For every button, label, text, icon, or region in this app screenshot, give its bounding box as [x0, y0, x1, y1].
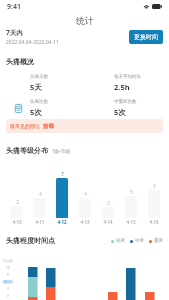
staticText: 最常见的部位 — [10, 123, 40, 129]
staticText: 4-13 — [80, 219, 90, 225]
staticText: 4-14 — [103, 219, 113, 225]
staticText: 4-11 — [35, 219, 45, 225]
button[interactable]: 最常见的部位 — [6, 119, 163, 133]
staticText: 5天 — [30, 82, 42, 92]
staticText: 4-15 — [126, 219, 136, 225]
staticText: 头痛天数 — [30, 74, 48, 80]
staticText: 1级-10级 — [52, 148, 71, 154]
staticText: 6 — [153, 183, 156, 189]
staticText: 统计 — [76, 15, 94, 26]
staticText: 4 — [39, 191, 42, 197]
staticText: 9:41 — [7, 2, 21, 12]
staticText: 5次 — [30, 107, 42, 117]
staticText: 头痛次数 — [30, 99, 48, 105]
staticText: 7天内 — [6, 28, 23, 37]
staticText: 4-12 — [57, 219, 67, 225]
staticText: 5次 — [114, 107, 126, 117]
staticText: 5 — [130, 189, 133, 195]
staticText: 2022.04.04-2022.04.11 — [6, 39, 59, 46]
staticText: 2 — [7, 294, 9, 298]
button[interactable]: 更换时间 — [129, 30, 163, 44]
staticText: 6万分 — [4, 280, 12, 284]
staticText: 4 — [7, 287, 9, 291]
staticText: 4-10 — [12, 219, 22, 225]
staticText: 2 — [16, 199, 19, 205]
staticText: 2 — [107, 200, 110, 206]
staticText: 7 — [61, 171, 64, 177]
staticText: 8 — [7, 273, 9, 277]
staticText: 中重度次数 — [114, 99, 137, 105]
staticText: 每天平均时长 — [114, 74, 141, 80]
staticText: 4 — [84, 191, 87, 197]
staticText: 重度 — [154, 238, 163, 244]
staticText: 轻度 — [116, 238, 125, 244]
staticText: 2.5h — [114, 82, 130, 92]
staticText: 更换时间 — [134, 33, 158, 41]
staticText: 中度 — [135, 238, 144, 244]
staticText: 12次数 — [3, 259, 14, 263]
staticText: 头痛概况 — [6, 57, 34, 66]
staticText: 前额 — [43, 123, 54, 130]
staticText: 10 — [6, 266, 10, 270]
staticText: 头痛等级分布 — [6, 146, 48, 155]
staticText: 4-16 — [149, 219, 159, 225]
staticText: 头痛程度时间点 — [6, 236, 55, 245]
